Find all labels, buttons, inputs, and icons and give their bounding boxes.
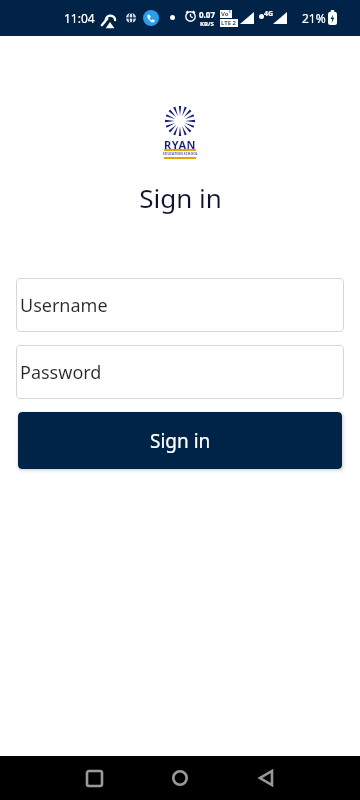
- staticText: 11:04: [64, 10, 95, 26]
- staticText: Sign in: [150, 428, 211, 454]
- staticText: 4G: [264, 9, 274, 19]
- staticText: 21%: [302, 10, 326, 26]
- button[interactable]: Sign in: [18, 412, 342, 469]
- staticText: LTE 2: [221, 19, 237, 27]
- staticText: RYAN: [164, 137, 196, 152]
- button[interactable]: Password: [16, 345, 344, 399]
- button[interactable]: Home: [155, 756, 205, 800]
- staticText: 0.07: [199, 9, 215, 20]
- staticText: Vo¹: [221, 10, 231, 18]
- staticText: Sign in: [139, 180, 222, 215]
- button[interactable]: Username: [16, 278, 344, 332]
- button[interactable]: Recents: [69, 756, 119, 800]
- button[interactable]: Back: [241, 756, 291, 800]
- staticText: KB/S: [200, 20, 214, 28]
- staticText: EDUCATION SCHOOL: [163, 151, 198, 156]
- staticText: Username: [20, 293, 108, 318]
- staticText: Password: [20, 360, 102, 385]
